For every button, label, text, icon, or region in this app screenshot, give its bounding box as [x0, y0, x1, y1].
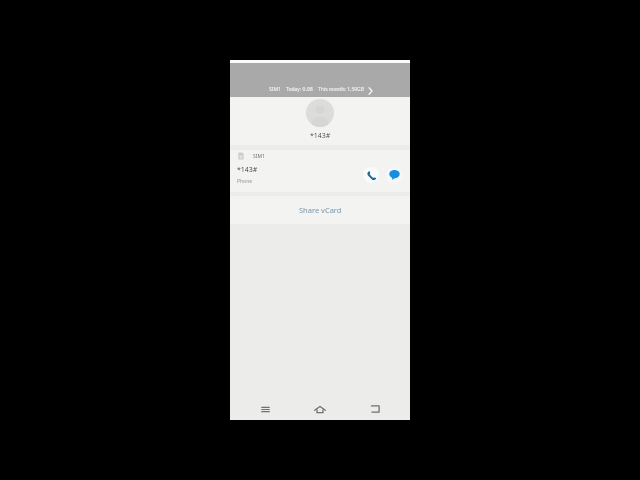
button[interactable]: Share vCard [230, 196, 410, 224]
staticText: Phone [237, 178, 253, 185]
staticText: *143# [310, 131, 331, 141]
staticText: SIM1 [269, 86, 281, 93]
staticText: SIM1 [253, 153, 265, 160]
staticText: Today: 0.0B [286, 86, 313, 93]
button[interactable]: Call [363, 167, 379, 183]
staticText: This month: 1.59GB [318, 86, 364, 93]
button[interactable]: SIM1 [230, 63, 410, 97]
button[interactable]: Home [290, 398, 350, 420]
button[interactable]: Message [386, 167, 402, 183]
staticText: Share vCard [299, 205, 342, 215]
staticText: *143# [237, 165, 258, 175]
button[interactable]: Back [350, 398, 410, 420]
button[interactable]: Recent apps [230, 398, 290, 420]
